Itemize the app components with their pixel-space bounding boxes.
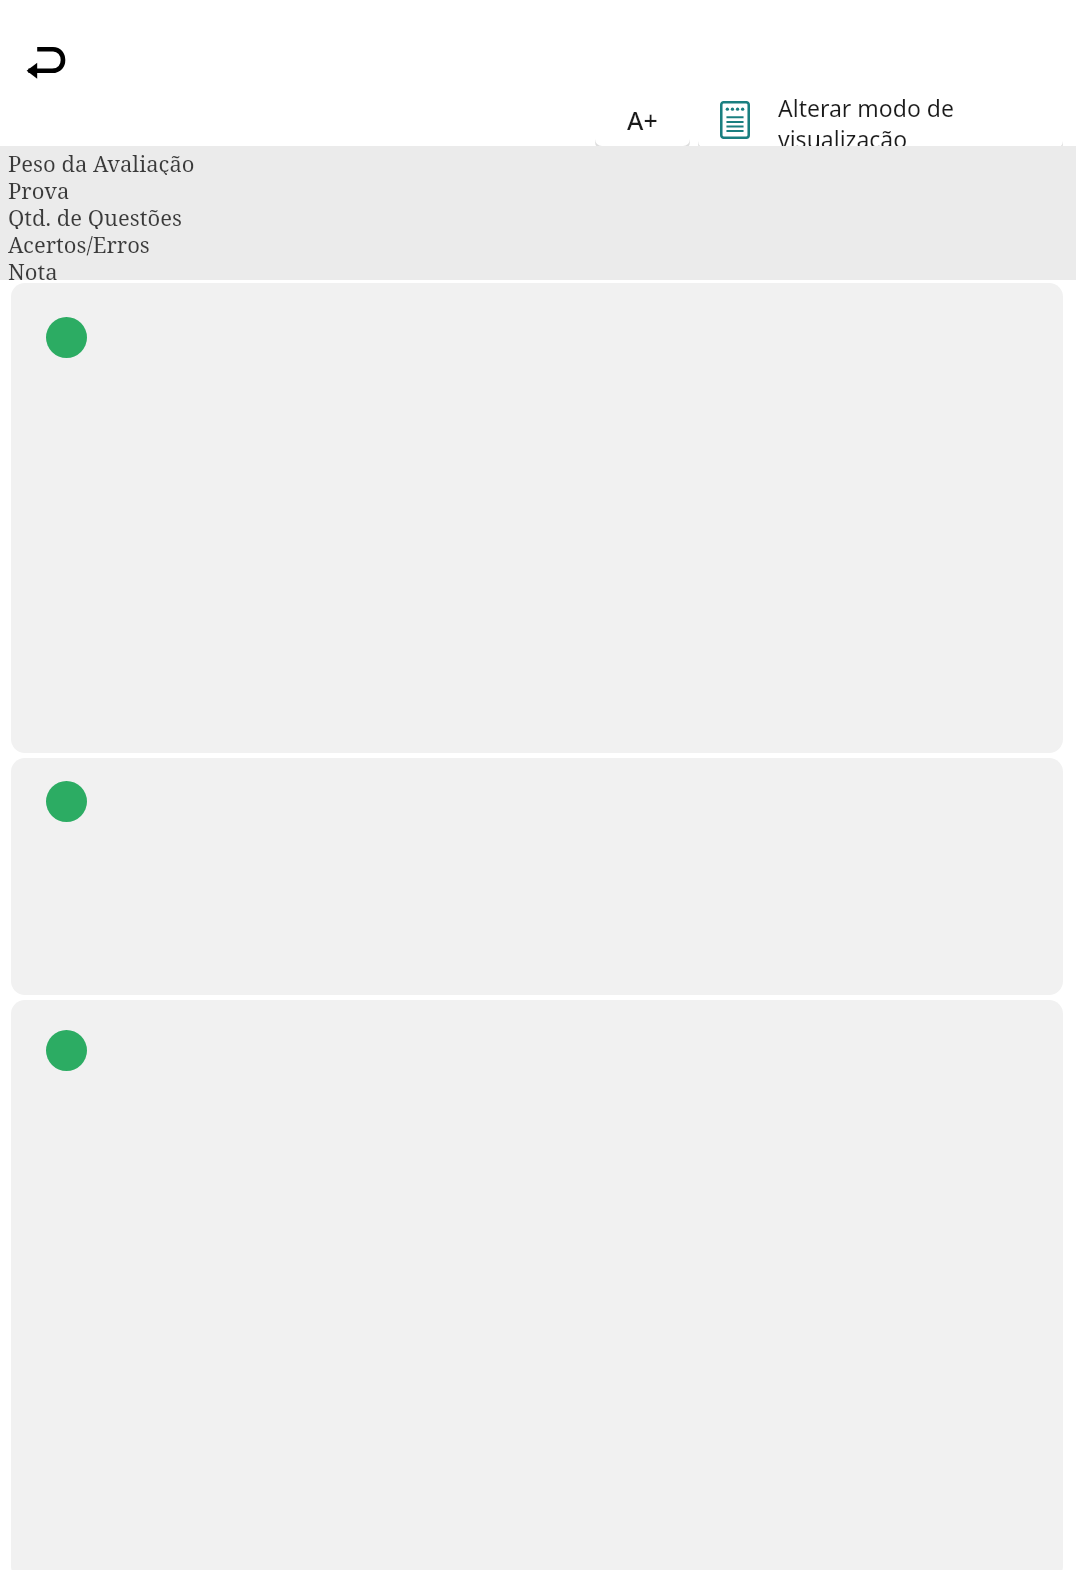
staticText: Nota <box>8 256 58 280</box>
staticText: Qtd. de Questões <box>8 202 182 229</box>
button[interactable] <box>11 283 1063 753</box>
staticText: Peso da Avaliação <box>8 148 195 175</box>
staticText: Acertos/Erros <box>8 229 150 256</box>
button[interactable]: Voltar <box>18 36 74 88</box>
staticText: Prova <box>8 175 70 202</box>
button[interactable] <box>11 758 1063 995</box>
staticText: Alterar modo de visualização <box>778 92 1045 148</box>
button[interactable]: A+ <box>595 94 690 146</box>
staticText: A+ <box>627 103 658 137</box>
button[interactable]: Alterar modo de visualização <box>698 92 1063 148</box>
button[interactable] <box>11 1000 1063 1570</box>
